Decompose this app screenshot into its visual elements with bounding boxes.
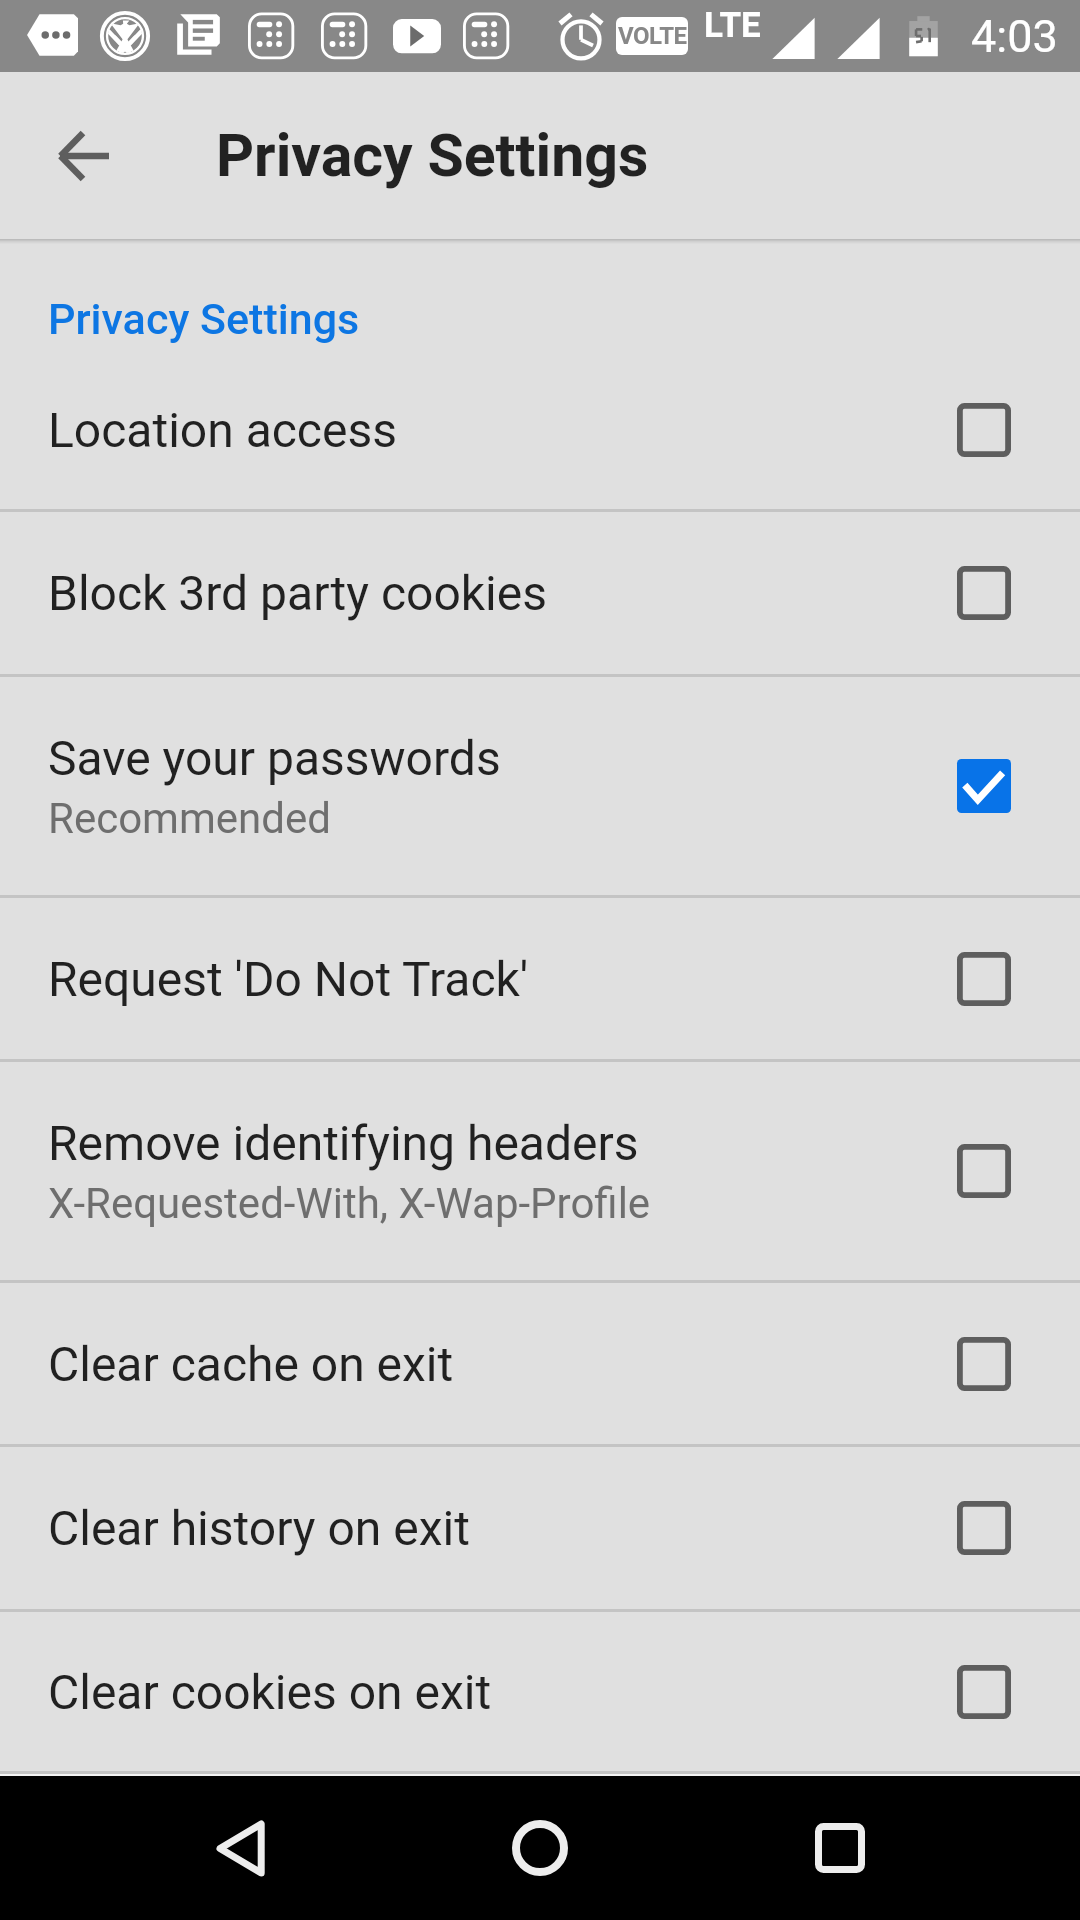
button[interactable]: Save your passwords	[0, 677, 1080, 895]
button[interactable]: Recent apps	[780, 1788, 900, 1908]
button[interactable]: Enabled checkbox	[936, 738, 1032, 834]
button[interactable]: Clear cache on exit	[0, 1283, 1080, 1444]
button[interactable]: Location access	[0, 351, 1080, 509]
staticText: Save your passwords	[48, 730, 501, 786]
staticText: LTE	[704, 5, 761, 46]
staticText: Block 3rd party cookies	[48, 565, 548, 621]
staticText: X-Requested-With, X-Wap-Profile	[48, 1179, 651, 1228]
staticText: Clear cache on exit	[48, 1336, 454, 1392]
button[interactable]: Request 'Do Not Track'	[0, 898, 1080, 1059]
button[interactable]: Block 3rd party cookies	[0, 512, 1080, 674]
staticText: Recommended	[48, 794, 331, 843]
button[interactable]: Clear cookies on exit	[0, 1612, 1080, 1771]
staticText: VOLTE	[618, 22, 687, 50]
button[interactable]: Navigate up	[36, 108, 132, 204]
button[interactable]: Disabled checkbox	[936, 1480, 1032, 1576]
staticText: Privacy Settings	[48, 294, 360, 344]
staticText: 4:03	[971, 10, 1058, 63]
button[interactable]: Home	[480, 1788, 600, 1908]
staticText: Clear cookies on exit	[48, 1664, 492, 1720]
staticText: Clear history on exit	[48, 1500, 470, 1556]
button[interactable]: Back	[180, 1788, 300, 1908]
button[interactable]: Disabled checkbox	[936, 1316, 1032, 1412]
staticText: Remove identifying headers	[48, 1115, 639, 1171]
button[interactable]: Clear history on exit	[0, 1447, 1080, 1609]
staticText: Privacy Settings	[216, 121, 649, 190]
button[interactable]: Disabled checkbox	[936, 931, 1032, 1027]
button[interactable]: Disabled checkbox	[936, 382, 1032, 478]
button[interactable]: Disabled checkbox	[936, 1644, 1032, 1740]
button[interactable]: Remove identifying headers	[0, 1062, 1080, 1280]
staticText: Location access	[48, 402, 397, 458]
staticText: Request 'Do Not Track'	[48, 951, 529, 1007]
button[interactable]: Disabled checkbox	[936, 545, 1032, 641]
button[interactable]: Disabled checkbox	[936, 1123, 1032, 1219]
